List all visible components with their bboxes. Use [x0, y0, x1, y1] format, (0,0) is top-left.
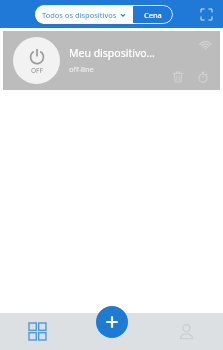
- button[interactable]: Todos os dispositivos: [35, 5, 133, 24]
- staticText: Cena: [144, 10, 162, 20]
- button[interactable]: Scan: [197, 5, 215, 23]
- staticText: off-line: [69, 64, 94, 74]
- button[interactable]: Cena: [133, 5, 173, 24]
- staticText: Todos os dispositivos: [42, 10, 117, 20]
- button[interactable]: Wi-Fi signal: [197, 36, 213, 52]
- button[interactable]: Power toggle: [13, 37, 60, 84]
- button[interactable]: Delete: [169, 68, 187, 86]
- button[interactable]: Timer: [194, 68, 212, 86]
- staticText: OFF: [31, 66, 43, 75]
- staticText: Meu dispositivo…: [69, 46, 155, 60]
- button[interactable]: Power toggle: [3, 31, 220, 90]
- button[interactable]: Devices: [0, 313, 75, 350]
- button[interactable]: Add device: [96, 306, 128, 338]
